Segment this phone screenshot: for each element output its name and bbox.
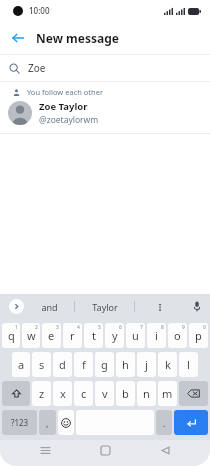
button[interactable]: l (179, 352, 198, 377)
button[interactable]: g (95, 352, 114, 377)
button[interactable]: n (137, 381, 156, 406)
button[interactable]: . (156, 410, 172, 435)
staticText: x (60, 386, 66, 401)
staticText: j (145, 357, 148, 372)
button[interactable]: You follow each other (0, 82, 210, 134)
staticText: 10:00 (29, 5, 50, 16)
staticText: ?123 (11, 417, 29, 428)
staticText: 8 (161, 324, 164, 331)
staticText: u (132, 328, 139, 343)
button[interactable]: v (95, 381, 114, 406)
staticText: q (8, 328, 15, 343)
button[interactable]: I (135, 294, 184, 319)
button[interactable]: More suggestions (9, 299, 24, 314)
button[interactable]: b (116, 381, 135, 406)
staticText: e (48, 328, 55, 343)
button[interactable]: z (32, 381, 51, 406)
staticText: Zoe Taylor (39, 100, 88, 113)
staticText: , (46, 417, 49, 429)
staticText: k (165, 357, 171, 372)
staticText: 9 (182, 324, 185, 331)
staticText: 3 (56, 324, 59, 331)
button[interactable]: Home (90, 440, 120, 461)
staticText: n (143, 386, 150, 401)
staticText: v (102, 386, 108, 401)
button[interactable]: a (12, 352, 30, 377)
staticText: f (82, 357, 86, 372)
button[interactable]: h (116, 352, 135, 377)
staticText: @zoetaylorwm (39, 114, 99, 126)
button[interactable]: u (126, 323, 145, 348)
staticText: i (155, 328, 158, 343)
button[interactable]: Shift (2, 381, 30, 406)
staticText: 5 (98, 324, 101, 331)
button[interactable]: r (63, 323, 82, 348)
button[interactable]: p (189, 323, 208, 348)
button[interactable]: w (22, 323, 40, 348)
button[interactable]: d (53, 352, 72, 377)
button[interactable]: m (158, 381, 177, 406)
staticText: y (112, 328, 118, 343)
staticText: New message (36, 30, 119, 46)
button[interactable]: and (24, 294, 74, 319)
button[interactable]: ?123 (2, 410, 37, 435)
staticText: l (187, 357, 190, 372)
button[interactable]: c (74, 381, 93, 406)
button[interactable]: Backspace (179, 381, 208, 406)
staticText: I (158, 301, 162, 313)
staticText: o (174, 328, 181, 343)
button[interactable]: t (84, 323, 103, 348)
staticText: . (163, 417, 166, 429)
button[interactable]: j (137, 352, 156, 377)
button[interactable]: Recents (30, 440, 60, 461)
staticText: p (195, 328, 202, 343)
staticText: 0 (203, 324, 206, 331)
button[interactable]: q (2, 323, 20, 348)
button[interactable]: s (32, 352, 51, 377)
staticText: 7 (140, 324, 143, 331)
staticText: Zoe (28, 61, 46, 75)
button[interactable]: Enter (174, 410, 208, 435)
button[interactable]: f (74, 352, 93, 377)
button[interactable]: x (53, 381, 72, 406)
button[interactable]: Taylor (75, 294, 134, 319)
button[interactable]: Zoe (0, 55, 210, 81)
staticText: r (70, 328, 75, 343)
staticText: 4 (77, 324, 80, 331)
button[interactable]: y (105, 323, 124, 348)
staticText: c (81, 386, 87, 401)
staticText: You follow each other (27, 87, 104, 97)
staticText: s (39, 357, 45, 372)
button[interactable]: k (158, 352, 177, 377)
staticText: w (27, 328, 36, 343)
staticText: 1 (15, 324, 18, 331)
staticText: b (122, 386, 129, 401)
button[interactable]: o (168, 323, 187, 348)
staticText: a (18, 357, 25, 372)
staticText: and (41, 301, 58, 313)
button[interactable]: i (147, 323, 166, 348)
staticText: t (92, 328, 96, 343)
staticText: h (122, 357, 129, 372)
button[interactable]: , (39, 410, 56, 435)
button[interactable]: Back (150, 440, 180, 461)
button[interactable]: Voice input (184, 294, 210, 319)
button[interactable]: Back (0, 22, 36, 54)
staticText: d (59, 357, 66, 372)
staticText: 6 (119, 324, 122, 331)
staticText: z (39, 386, 45, 401)
staticText: 2 (35, 324, 38, 331)
staticText: Taylor (92, 301, 118, 313)
staticText: g (101, 357, 108, 372)
staticText: m (162, 386, 173, 401)
button[interactable]: Emoji (58, 410, 74, 435)
button[interactable]: e (42, 323, 61, 348)
